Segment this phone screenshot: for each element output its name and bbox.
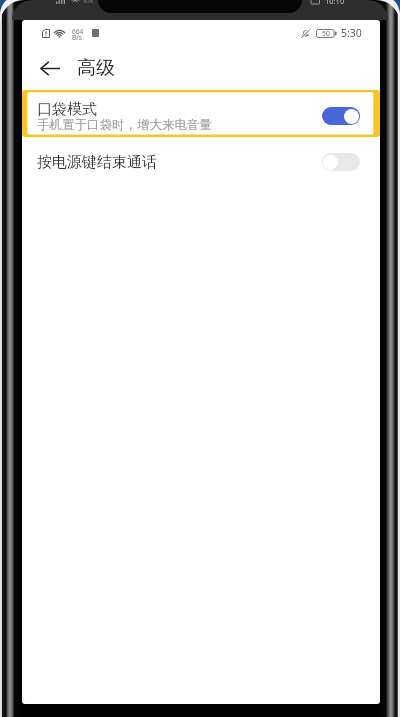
button[interactable]: Pocket mode toggle — [322, 107, 360, 125]
staticText: 口袋模式 — [37, 100, 97, 119]
button[interactable]: Back — [30, 48, 70, 88]
staticText: 10:10 — [325, 0, 345, 6]
staticText: 按电源键结束通话 — [37, 153, 322, 172]
staticText: 664 — [72, 27, 84, 36]
staticText: K/s — [84, 0, 93, 5]
staticText: 5:30 — [341, 26, 362, 40]
button[interactable]: 口袋模式 — [22, 90, 380, 137]
staticText: B/s — [72, 33, 82, 42]
button[interactable]: 按电源键结束通话 — [22, 140, 380, 184]
staticText: 手机置于口袋时，增大来电音量 — [37, 117, 212, 133]
staticText: 高级 — [77, 56, 115, 80]
staticText: 50 — [322, 29, 330, 38]
button[interactable]: End call with power button toggle — [322, 153, 360, 171]
